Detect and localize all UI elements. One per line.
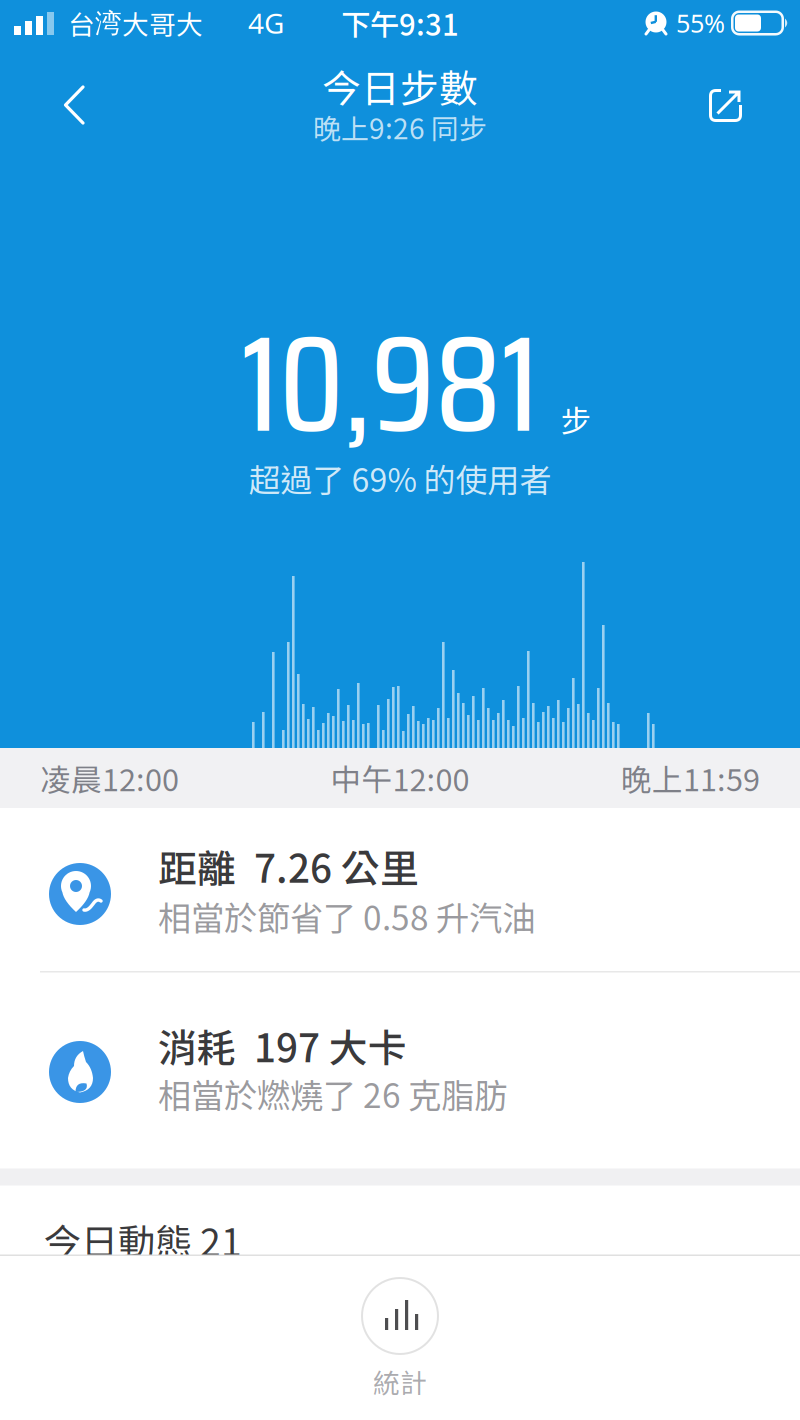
staticText: 步 (560, 397, 591, 441)
staticText: 下午9:31 (341, 2, 459, 44)
staticText: 統計 (373, 1362, 427, 1401)
staticText: 台湾大哥大 (68, 4, 203, 42)
staticText: 距離 7.26 公里 (158, 838, 419, 894)
staticText: 超過了 69% 的使用者 (248, 455, 551, 501)
staticText: 4G (248, 4, 284, 42)
staticText: 10,981 (241, 278, 539, 490)
staticText: 凌晨12:00 (40, 756, 179, 800)
button[interactable]: 統計 (361, 1277, 439, 1401)
staticText: 今日動態 21 (44, 1213, 242, 1267)
staticText: 今日步數 (322, 58, 478, 114)
staticText: 消耗 197 大卡 (158, 1017, 407, 1073)
staticText: 相當於燃燒了 26 克脂肪 (158, 1069, 507, 1118)
staticText: 相當於節省了 0.58 升汽油 (158, 892, 535, 940)
button[interactable]: Back (44, 67, 105, 143)
staticText: 晚上11:59 (621, 756, 760, 800)
button[interactable]: Share (697, 77, 754, 134)
staticText: 晚上9:26 同步 (313, 107, 487, 147)
staticText: 中午12:00 (330, 756, 469, 800)
staticText: 55% (676, 6, 725, 40)
